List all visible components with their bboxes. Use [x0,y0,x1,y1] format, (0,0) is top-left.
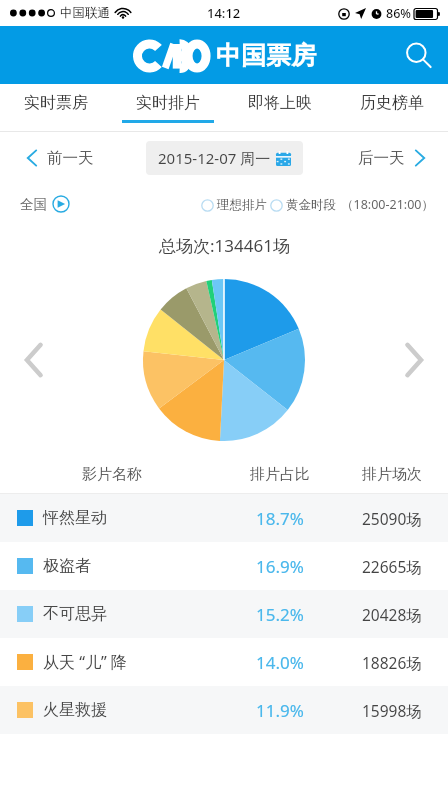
staticText: 25090场 [362,508,422,529]
staticText: 中国票房 [216,40,316,71]
button[interactable]: Next chart [388,334,440,386]
staticText: 火星救援 [43,700,107,720]
staticText: 极盗者 [43,556,91,576]
staticText: 20428场 [362,604,422,625]
button[interactable]: 即将上映 [224,84,336,132]
staticText: 全国 [20,196,47,213]
staticText: 14:12 [207,4,241,22]
staticText: 后一天 [358,148,405,168]
staticText: 历史榜单 [360,93,424,113]
staticText: 实时排片 [136,93,200,113]
staticText: 影片名称 [82,465,142,484]
staticText: 16.9% [256,555,304,578]
staticText: 15998场 [362,700,422,721]
staticText: 从天 “儿” 降 [43,651,127,673]
button[interactable]: 怦然星动 [0,494,448,542]
button[interactable]: 历史榜单 [336,84,448,132]
button[interactable]: 2015-12-07 周一 [146,141,303,175]
staticText: 即将上映 [248,93,312,113]
staticText: 2015-12-07 周一 [158,148,271,168]
staticText: 18.7% [256,507,304,530]
button[interactable]: Previous chart [8,334,60,386]
button[interactable]: 理想排片 [201,197,267,213]
button[interactable]: 极盗者 [0,542,448,590]
staticText: 18826场 [362,652,422,673]
staticText: 怦然星动 [43,508,107,528]
button[interactable]: Search [394,31,442,79]
staticText: 不可思异 [43,604,107,624]
staticText: 黄金时段 [286,197,336,213]
staticText: 14.0% [256,651,304,674]
staticText: 11.9% [256,699,304,722]
button[interactable]: 实时排片 [112,84,224,132]
button[interactable]: 黄金时段 [270,197,336,213]
staticText: 理想排片 [217,197,267,213]
button[interactable]: 不可思异 [0,590,448,638]
button[interactable]: 实时票房 [0,84,112,132]
staticText: 排片占比 [250,465,310,484]
button[interactable]: 前一天 [26,148,94,168]
staticText: （18:00-21:00） [341,196,434,213]
staticText: 前一天 [47,148,94,168]
button[interactable]: 后一天 [358,148,426,168]
staticText: 86% [386,5,411,22]
staticText: 总场次:134461场 [159,234,290,257]
staticText: 排片场次 [362,465,422,484]
button[interactable]: 火星救援 [0,686,448,734]
button[interactable]: 从天 “儿” 降 [0,638,448,686]
staticText: 中国联通 [60,5,110,21]
button[interactable]: 全国 [20,195,70,213]
staticText: 15.2% [256,603,304,626]
staticText: 实时票房 [24,93,88,113]
staticText: 22665场 [362,556,422,577]
